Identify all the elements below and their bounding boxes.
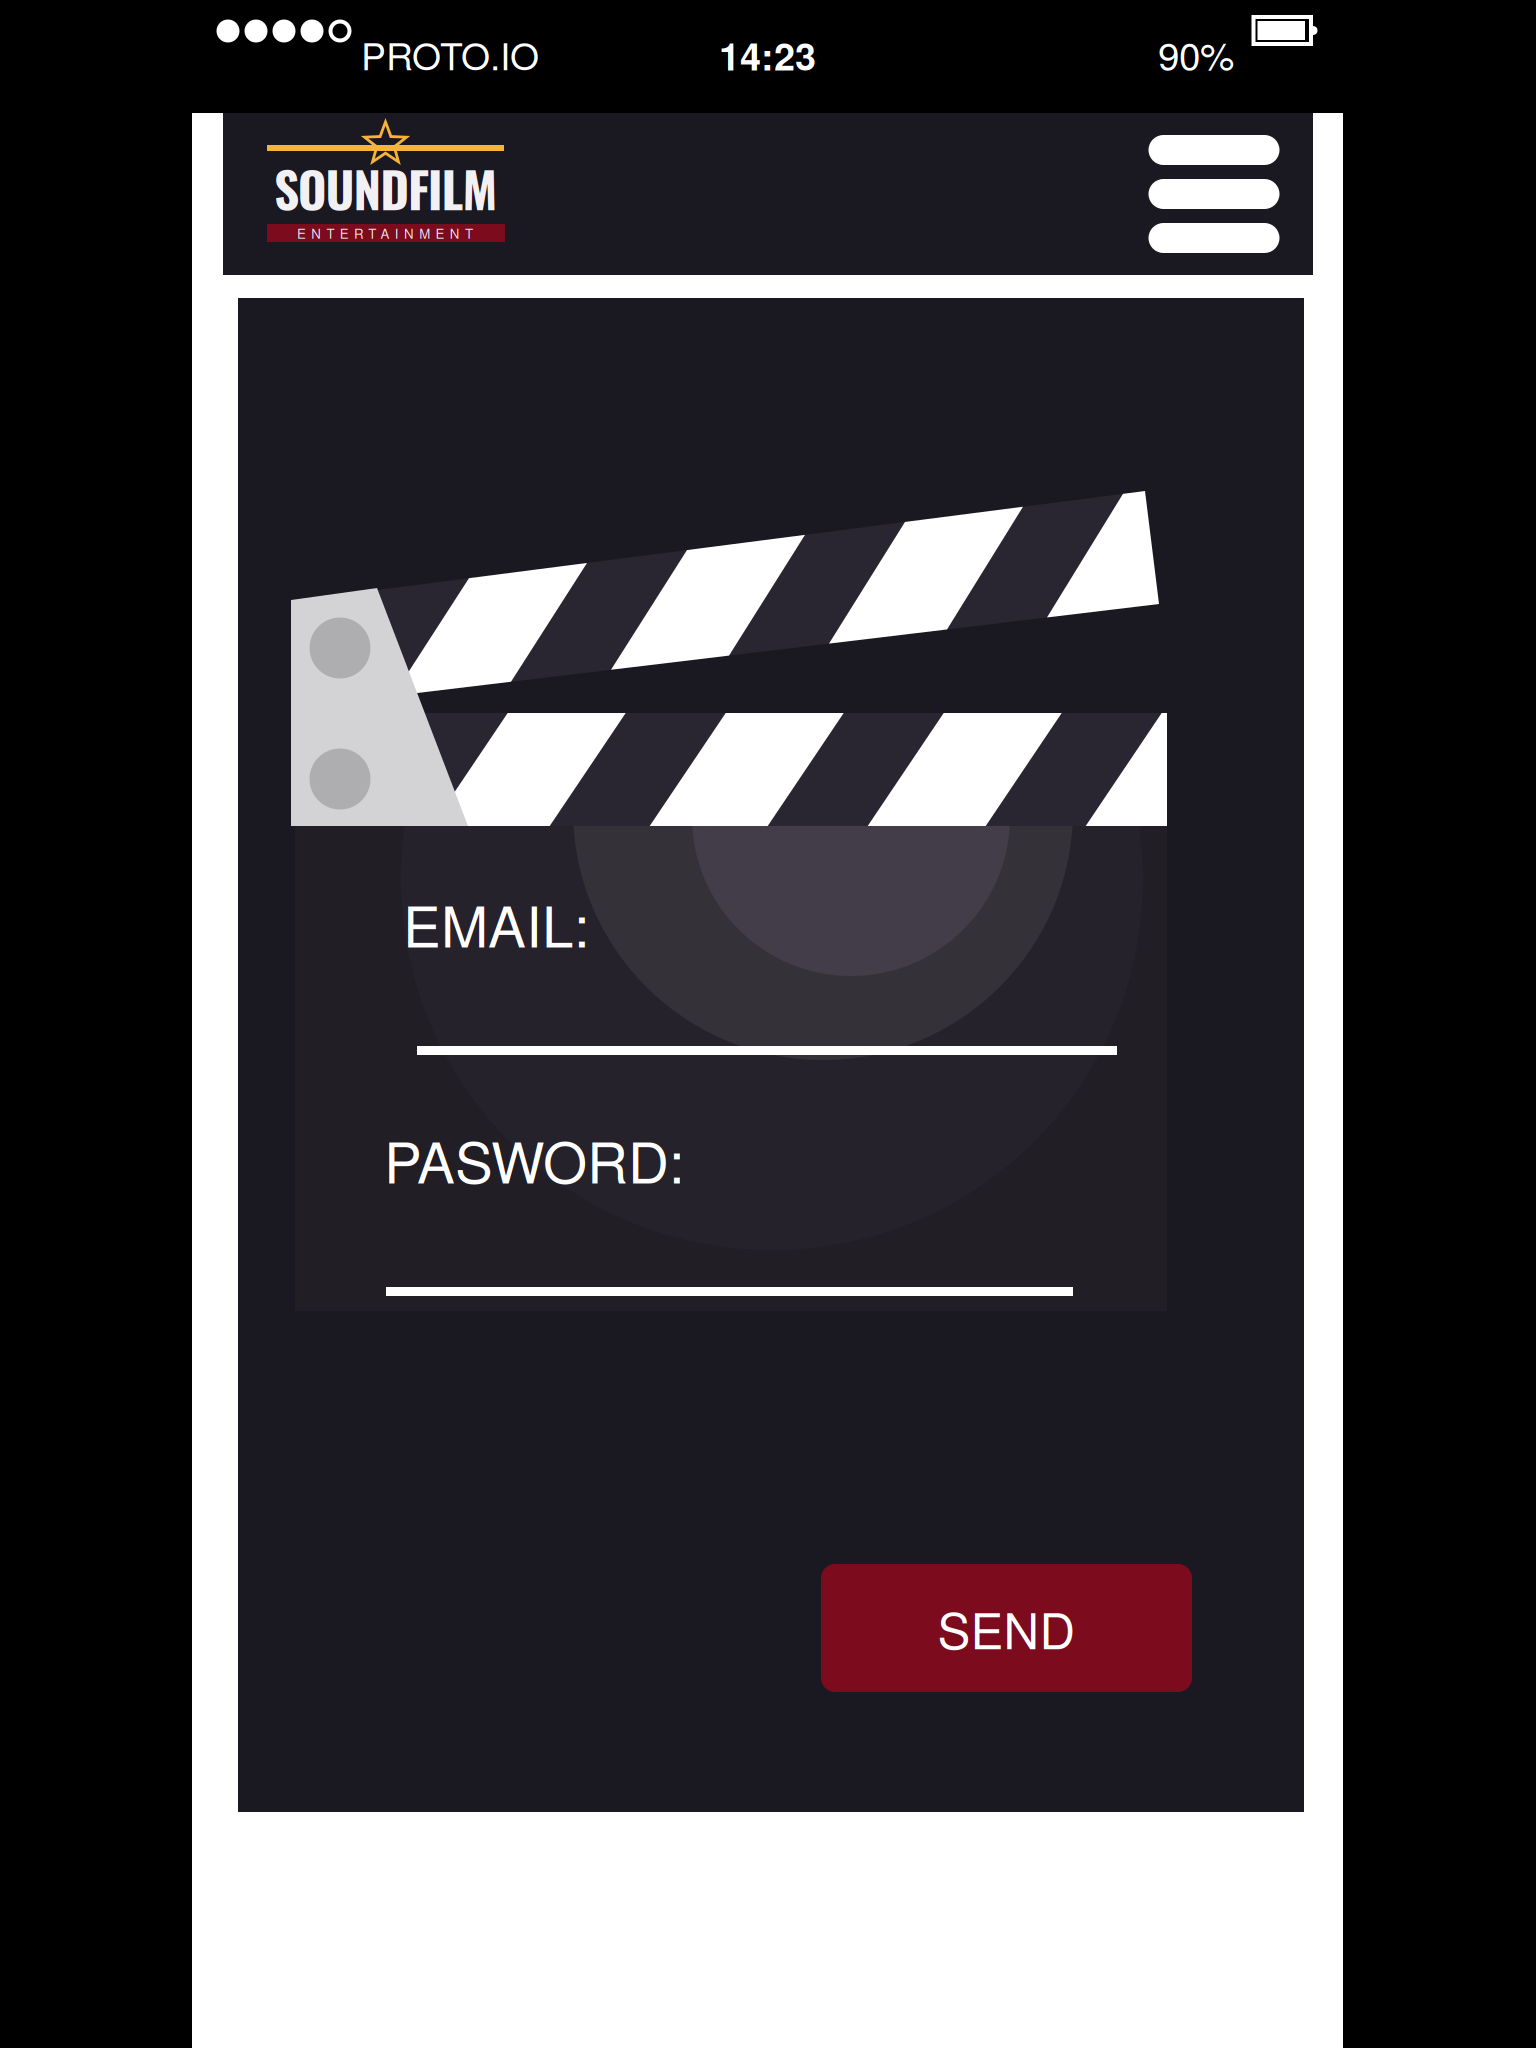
button[interactable]: SEND: [821, 1564, 1192, 1692]
button[interactable]: Menu: [1126, 113, 1301, 275]
staticText: PROTO.IO: [361, 27, 539, 81]
staticText: PASWORD:: [384, 1118, 685, 1199]
staticText: 90%: [1158, 26, 1234, 82]
staticText: SEND: [937, 1593, 1075, 1663]
staticText: ENTERTAINMENT: [297, 223, 473, 243]
staticText: SOUNDFILM: [274, 151, 497, 224]
staticText: EMAIL:: [403, 882, 590, 963]
staticText: 14:23: [719, 28, 816, 82]
